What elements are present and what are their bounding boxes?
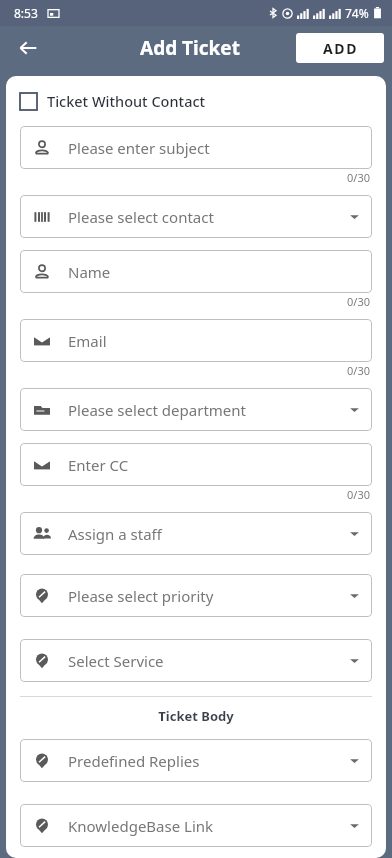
button[interactable]: Enter CC	[20, 443, 372, 486]
button[interactable]: Back	[8, 28, 48, 68]
button[interactable]: Please enter subject	[20, 126, 372, 169]
button[interactable]: Please select contact	[20, 195, 372, 238]
button[interactable]: Select Service	[20, 639, 372, 682]
staticText: Please select priority	[68, 586, 214, 606]
staticText: 74%	[345, 5, 369, 21]
staticText: Enter CC	[68, 455, 129, 475]
staticText: Ticket Body	[20, 707, 372, 725]
staticText: Please select contact	[68, 207, 214, 227]
staticText: Add Ticket	[140, 35, 240, 61]
button[interactable]: ADD	[296, 33, 384, 63]
staticText: Predefined Replies	[68, 751, 200, 771]
button[interactable]: Name	[20, 250, 372, 293]
staticText: 0/30	[347, 294, 370, 309]
button[interactable]: Ticket Without Contact	[20, 89, 206, 113]
staticText: Please select department	[68, 400, 246, 420]
staticText: 0/30	[347, 170, 370, 185]
staticText: 8:53	[14, 5, 38, 21]
staticText: 0/30	[347, 487, 370, 502]
staticText: 0/30	[347, 363, 370, 378]
button[interactable]: Assign a staff	[20, 512, 372, 555]
button[interactable]: KnowledgeBase Link	[20, 804, 372, 847]
staticText: Ticket Without Contact	[47, 91, 206, 111]
button[interactable]: Email	[20, 319, 372, 362]
staticText: ADD	[323, 39, 358, 58]
staticText: Select Service	[68, 651, 164, 671]
staticText: KnowledgeBase Link	[68, 816, 214, 836]
staticText: Email	[68, 331, 107, 351]
button[interactable]: Predefined Replies	[20, 739, 372, 782]
staticText: Name	[68, 262, 111, 282]
button[interactable]: Please select priority	[20, 574, 372, 617]
staticText: Please enter subject	[68, 138, 210, 158]
button[interactable]: Please select department	[20, 388, 372, 431]
staticText: Assign a staff	[68, 524, 162, 544]
